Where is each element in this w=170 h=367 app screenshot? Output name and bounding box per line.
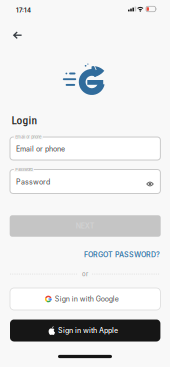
button[interactable]: NEXT [10, 215, 161, 237]
button[interactable]: FORGOT PASSWORD? [84, 250, 160, 259]
staticText: NEXT [76, 222, 95, 230]
staticText: Login [11, 114, 37, 127]
staticText: FORGOT PASSWORD? [84, 250, 160, 259]
button[interactable]: Sign in with Google [10, 288, 160, 310]
staticText: Sign in with Google [55, 295, 119, 303]
staticText: 17:14 [16, 7, 31, 14]
staticText: Sign in with Apple [58, 326, 118, 335]
staticText: Password [16, 178, 50, 186]
staticText: Password [15, 167, 32, 172]
button[interactable]: Show password [146, 181, 154, 187]
button[interactable]: Back [10, 31, 26, 39]
staticText: or [82, 270, 88, 278]
button[interactable]: Sign in with Apple [10, 319, 160, 341]
staticText: Email or phone [15, 135, 41, 139]
staticText: Email or phone [16, 145, 65, 153]
